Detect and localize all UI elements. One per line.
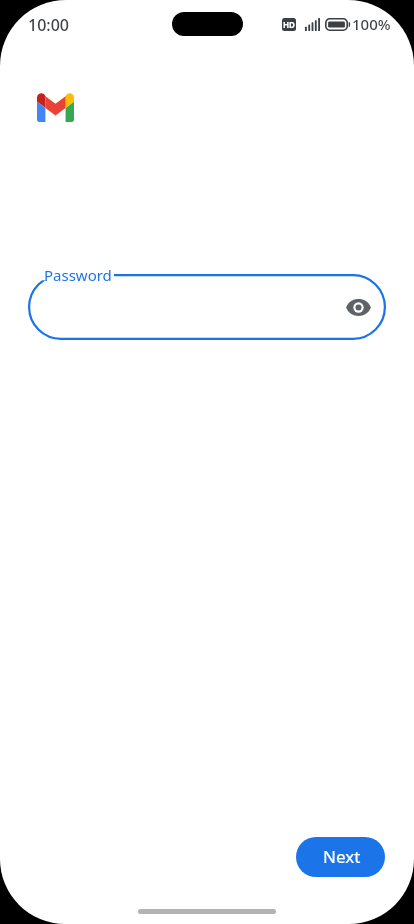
staticText: HD (283, 19, 295, 30)
staticText: Next (323, 845, 361, 868)
staticText: 100% (352, 14, 391, 34)
button[interactable]: Show password (334, 283, 382, 331)
staticText: Password (44, 265, 112, 285)
button[interactable]: Next (296, 837, 385, 877)
staticText: 10:00 (28, 14, 69, 36)
